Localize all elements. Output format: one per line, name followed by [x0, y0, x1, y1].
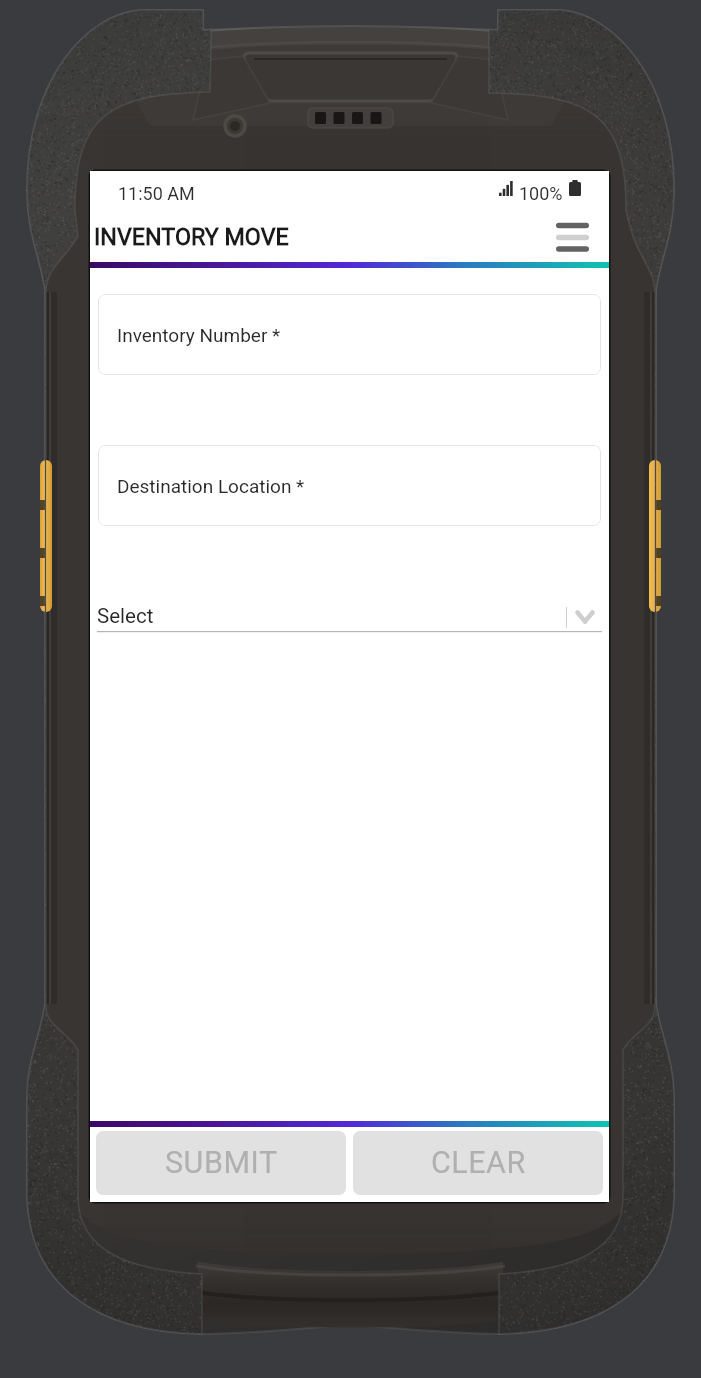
- button[interactable]: Select: [90, 604, 609, 646]
- staticText: SUBMIT: [165, 1145, 278, 1181]
- button[interactable]: SUBMIT: [96, 1131, 346, 1195]
- button[interactable]: Destination Location *: [98, 445, 601, 526]
- staticText: 100%: [519, 183, 563, 204]
- button[interactable]: Menu: [546, 218, 598, 262]
- staticText: CLEAR: [431, 1145, 526, 1181]
- staticText: Inventory Number *: [117, 324, 281, 346]
- staticText: Select: [97, 604, 154, 628]
- staticText: INVENTORY MOVE: [94, 223, 289, 250]
- button[interactable]: CLEAR: [353, 1131, 603, 1195]
- staticText: Destination Location *: [117, 475, 305, 497]
- staticText: 11:50 AM: [118, 183, 195, 204]
- button[interactable]: Inventory Number *: [98, 294, 601, 375]
